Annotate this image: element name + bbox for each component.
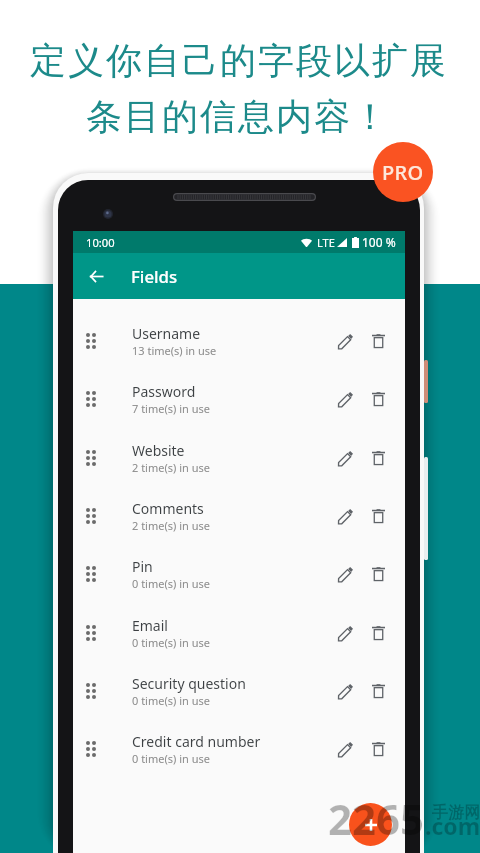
button[interactable]: Edit Website	[327, 438, 363, 478]
button[interactable]: Edit Password	[327, 379, 363, 419]
button[interactable]: Delete Pin	[360, 554, 396, 594]
staticText: 0 time(s) in use	[132, 576, 210, 591]
button[interactable]: Delete Security question	[360, 671, 396, 711]
button[interactable]: Edit Pin	[327, 554, 363, 594]
staticText: 条目的信息内容！	[85, 94, 389, 139]
staticText: 0 time(s) in use	[132, 751, 210, 766]
button[interactable]: Username	[73, 313, 405, 371]
button[interactable]: Delete Website	[360, 438, 396, 478]
staticText: 7 time(s) in use	[132, 401, 210, 416]
staticText: 13 time(s) in use	[132, 343, 217, 358]
staticText: 2 time(s) in use	[132, 518, 210, 533]
button[interactable]: Security question	[73, 663, 405, 721]
staticText: 2 time(s) in use	[132, 460, 210, 475]
staticText: Website	[132, 441, 185, 460]
staticText: 0 time(s) in use	[132, 693, 210, 708]
staticText: 手游网	[432, 803, 480, 823]
staticText: 定义你自己的字段以扩展	[29, 38, 447, 83]
staticText: Security question	[132, 674, 246, 693]
staticText: Email	[132, 616, 168, 635]
button[interactable]: PRO	[373, 142, 433, 202]
button[interactable]: Delete Password	[360, 379, 396, 419]
staticText: 10:00	[86, 235, 115, 250]
button[interactable]: Delete Username	[360, 321, 396, 361]
button[interactable]: Comments	[73, 488, 405, 546]
button[interactable]: Edit Comments	[327, 496, 363, 536]
staticText: Fields	[131, 265, 178, 288]
button[interactable]: Edit Credit card number	[327, 729, 363, 769]
button[interactable]: Delete Credit card number	[360, 729, 396, 769]
staticText: 2265	[328, 790, 425, 847]
button[interactable]: Edit Username	[327, 321, 363, 361]
button[interactable]: Pin	[73, 546, 405, 604]
button[interactable]: Delete Comments	[360, 496, 396, 536]
button[interactable]: Credit card number	[73, 721, 405, 779]
staticText: PRO	[382, 159, 424, 186]
button[interactable]: Password	[73, 371, 405, 429]
staticText: Password	[132, 382, 196, 401]
button[interactable]: Website	[73, 430, 405, 488]
staticText: Credit card number	[132, 732, 261, 751]
button[interactable]: Edit Email	[327, 613, 363, 653]
staticText: Comments	[132, 499, 204, 518]
staticText: 0 time(s) in use	[132, 635, 210, 650]
staticText: 100 %	[362, 234, 396, 250]
button[interactable]: Add field	[349, 803, 392, 846]
staticText: Pin	[132, 557, 153, 576]
button[interactable]: Back	[73, 253, 120, 299]
button[interactable]: Email	[73, 605, 405, 663]
staticText: .com	[425, 810, 480, 841]
button[interactable]: Edit Security question	[327, 671, 363, 711]
staticText: LTE	[317, 235, 335, 250]
staticText: Username	[132, 324, 201, 343]
button[interactable]: Delete Email	[360, 613, 396, 653]
